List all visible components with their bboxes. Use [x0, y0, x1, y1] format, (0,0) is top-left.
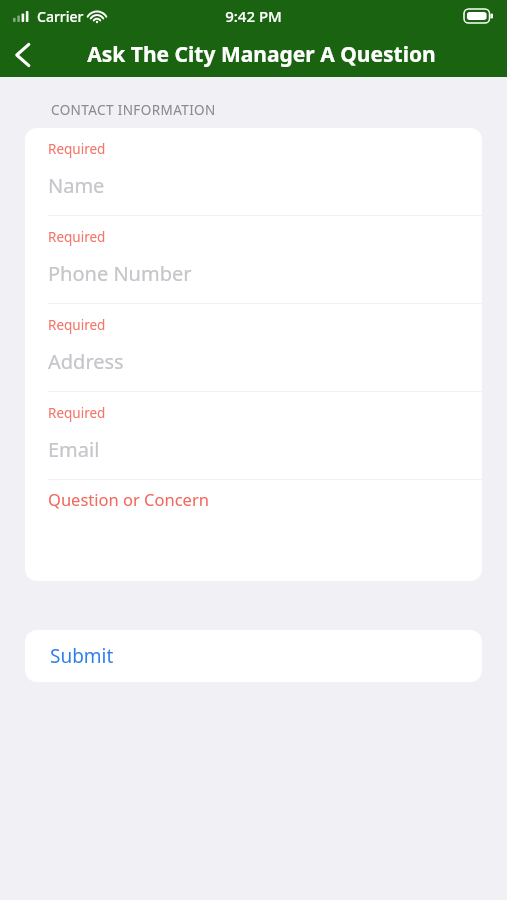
staticText: Question or Concern	[48, 488, 209, 510]
staticText: Name	[48, 172, 105, 199]
staticText: Carrier	[37, 7, 84, 26]
staticText: Required	[48, 140, 106, 158]
staticText: Required	[48, 316, 106, 334]
staticText: 9:42 PM	[225, 6, 282, 26]
button[interactable]: Required	[25, 392, 482, 479]
staticText: Address	[48, 348, 124, 375]
button[interactable]: Required	[25, 304, 482, 391]
staticText: CONTACT INFORMATION	[51, 101, 216, 119]
button[interactable]: Submit	[25, 630, 482, 682]
staticText: Submit	[50, 643, 114, 669]
button[interactable]: Question or Concern	[25, 480, 482, 581]
staticText: Required	[48, 404, 106, 422]
staticText: Required	[48, 228, 106, 246]
staticText: Phone Number	[48, 260, 192, 287]
button[interactable]: Back	[0, 33, 44, 77]
staticText: Ask The City Manager A Question	[87, 40, 436, 69]
button[interactable]: Required	[25, 128, 482, 215]
button[interactable]: Required	[25, 216, 482, 303]
staticText: Email	[48, 436, 100, 463]
